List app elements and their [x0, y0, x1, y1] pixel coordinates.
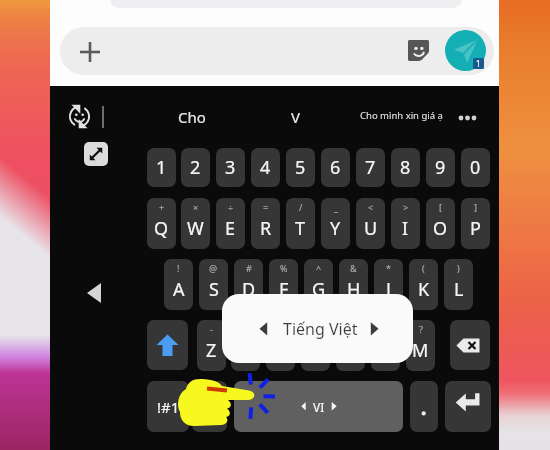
staticText: G — [312, 277, 326, 302]
staticText: ] — [474, 201, 477, 213]
button[interactable]: * — [374, 259, 403, 310]
button[interactable]: @ — [199, 259, 228, 310]
button[interactable]: > — [391, 198, 420, 249]
staticText: O — [433, 216, 448, 241]
button[interactable]: + — [147, 198, 176, 249]
button[interactable]: 7 — [356, 148, 385, 187]
button[interactable]: # — [234, 259, 263, 310]
staticText: 4 — [260, 155, 271, 180]
button[interactable] — [147, 320, 188, 370]
button[interactable]: Tiếng Việt keyboard language — [222, 294, 413, 363]
button[interactable]: , — [192, 381, 227, 432]
staticText: D — [242, 277, 256, 302]
button[interactable]: : — [301, 320, 330, 371]
button[interactable] — [445, 381, 491, 432]
button[interactable]: Space, switch language — [234, 381, 403, 432]
button[interactable]: / — [286, 198, 315, 249]
button[interactable]: [ — [426, 198, 455, 249]
button[interactable]: ( — [409, 259, 438, 310]
staticText: Z — [206, 338, 217, 363]
button[interactable]: 9 — [426, 148, 455, 187]
staticText: 0 — [470, 155, 481, 180]
button[interactable]: ^ — [304, 259, 333, 310]
button[interactable]: ? — [406, 320, 435, 371]
button[interactable]: 0 — [461, 148, 490, 187]
staticText: VI — [313, 399, 325, 415]
staticText: E — [225, 216, 236, 241]
staticText: T — [295, 216, 306, 241]
button[interactable]: ] — [461, 198, 490, 249]
button[interactable]: ! — [164, 259, 193, 310]
staticText: ) — [457, 262, 460, 274]
staticText: 8 — [400, 155, 411, 180]
staticText: A — [173, 277, 185, 302]
button[interactable]: Emoji — [68, 105, 91, 128]
button[interactable]: ) — [444, 259, 473, 310]
staticText: 6 — [330, 155, 341, 180]
button[interactable]: & — [339, 259, 368, 310]
button[interactable] — [410, 381, 438, 432]
button[interactable]: 8 — [391, 148, 420, 187]
button[interactable]: ' — [266, 320, 295, 371]
staticText: ; — [349, 323, 352, 335]
staticText: [ — [439, 201, 442, 213]
button[interactable]: 3 — [216, 148, 245, 187]
button[interactable]: - — [197, 320, 226, 371]
staticText: L — [454, 277, 464, 302]
staticText: 7 — [365, 155, 376, 180]
staticText: S — [209, 277, 219, 302]
button[interactable]: < — [356, 198, 385, 249]
staticText: Tiếng Việt — [283, 318, 358, 340]
button[interactable]: 4 — [251, 148, 280, 187]
button[interactable]: Stickers — [408, 40, 429, 61]
button[interactable]: Message input — [60, 27, 494, 75]
button[interactable]: 5 — [286, 148, 315, 187]
staticText: 5 — [295, 155, 306, 180]
button[interactable]: More options — [458, 110, 484, 126]
button[interactable]: !#1 — [147, 381, 189, 432]
staticText: W — [187, 216, 204, 241]
staticText: F — [279, 277, 289, 302]
staticText: > — [403, 201, 409, 213]
button[interactable]: % — [269, 259, 298, 310]
staticText: U — [364, 216, 378, 241]
staticText: M — [412, 338, 429, 363]
staticText: 1 — [156, 155, 167, 180]
button[interactable]: 1 — [147, 148, 176, 187]
staticText: R — [260, 216, 272, 241]
button[interactable]: = — [251, 198, 280, 249]
staticText: : — [314, 323, 317, 335]
staticText: # — [246, 262, 252, 274]
button[interactable]: Add attachment — [80, 42, 100, 62]
button[interactable]: V — [291, 107, 301, 127]
button[interactable]: ÷ — [216, 198, 245, 249]
button[interactable]: Cho — [178, 107, 206, 127]
button[interactable]: × — [181, 198, 210, 249]
staticText: I — [402, 216, 409, 241]
button[interactable]: Back — [86, 282, 101, 304]
button[interactable]: 2 — [181, 148, 210, 187]
staticText: Y — [330, 216, 341, 241]
button[interactable]: ; — [336, 320, 365, 371]
staticText: & — [350, 262, 357, 274]
staticText: 1 — [476, 58, 481, 69]
staticText: ÷ — [228, 201, 234, 213]
button[interactable]: Expand keyboard — [84, 142, 108, 166]
button[interactable]: _ — [321, 198, 350, 249]
staticText: J — [386, 277, 391, 302]
staticText: Q — [154, 216, 169, 241]
button[interactable] — [450, 320, 490, 370]
button[interactable]: ! — [371, 320, 400, 371]
button[interactable]: 6 — [321, 148, 350, 187]
staticText: % — [280, 262, 288, 274]
button[interactable]: Cho mình xin giá ạ — [360, 109, 443, 122]
button[interactable]: Send message — [445, 30, 486, 71]
staticText: 9 — [435, 155, 446, 180]
staticText: ( — [422, 262, 425, 274]
button[interactable]: " — [231, 320, 260, 371]
